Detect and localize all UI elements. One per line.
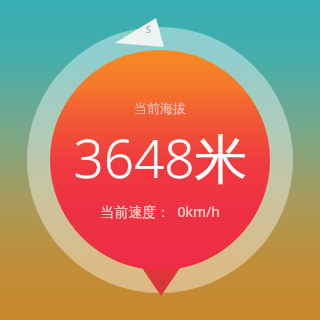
staticText: N (159, 276, 166, 288)
staticText: 3648米 (73, 121, 248, 193)
staticText: 当前速度： 0km/h (100, 202, 220, 221)
button[interactable]: South compass marker (0, 0, 320, 320)
staticText: S (146, 23, 151, 35)
staticText: 当前海拔 (134, 100, 186, 116)
